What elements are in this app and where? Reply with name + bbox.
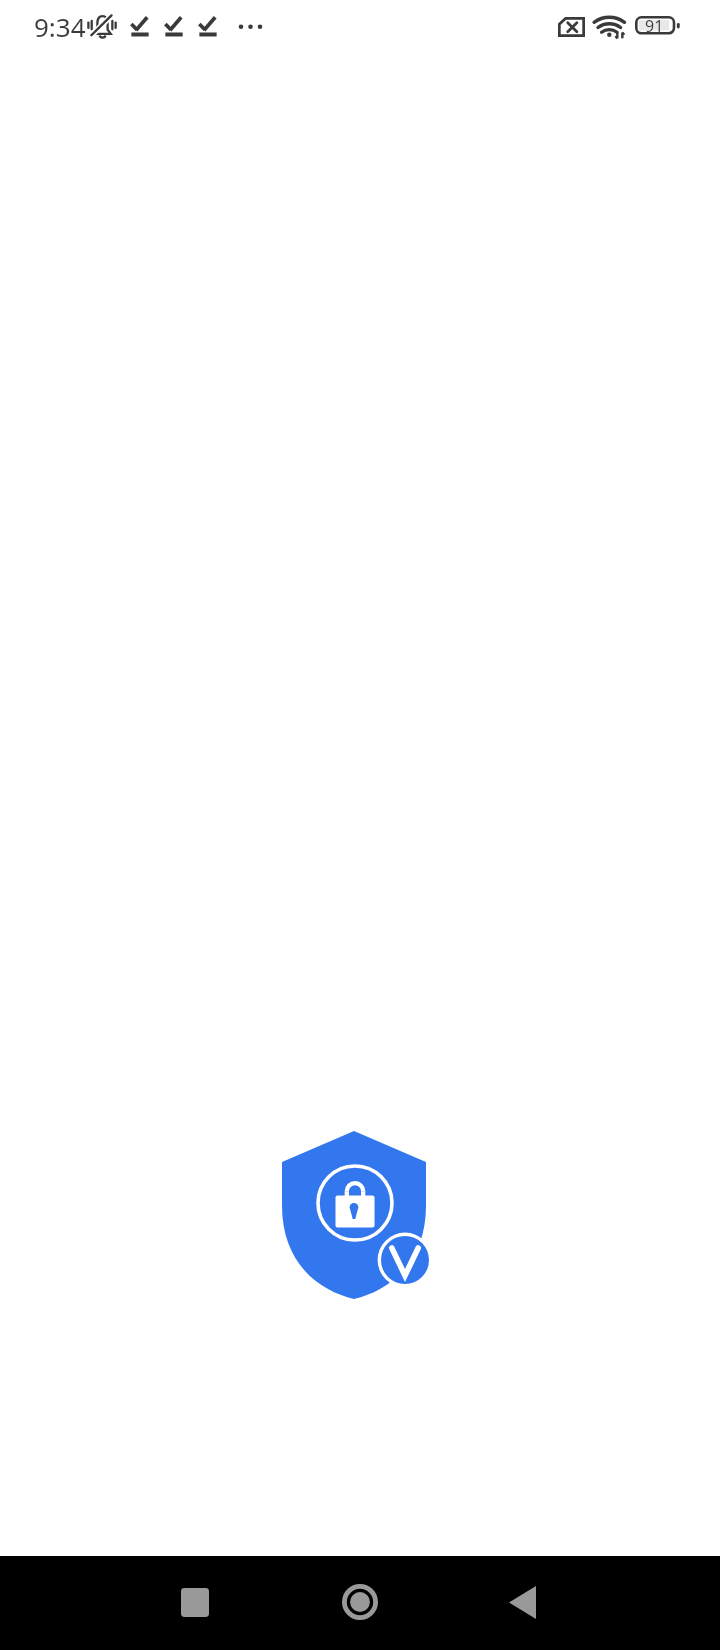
staticText: 9:34 <box>34 9 86 44</box>
button[interactable]: Home <box>312 1556 408 1650</box>
staticText: 91 <box>645 15 664 35</box>
button[interactable]: Recent apps <box>147 1556 243 1650</box>
button[interactable]: Back <box>474 1556 570 1650</box>
